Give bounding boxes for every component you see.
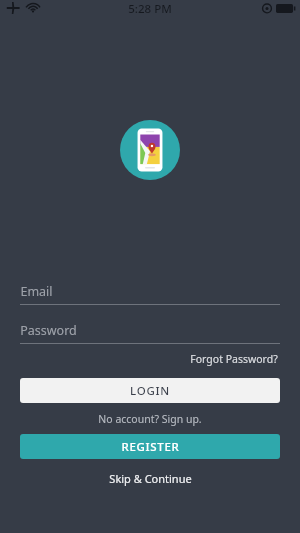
staticText: No account? Sign up.	[98, 412, 202, 426]
staticText: REGISTER	[121, 439, 180, 455]
staticText: Password	[20, 322, 77, 339]
staticText: Skip & Continue	[109, 471, 192, 486]
button[interactable]: Email	[20, 276, 280, 305]
button[interactable]: Forgot Password?	[188, 350, 280, 368]
button[interactable]: Skip & Continue	[105, 469, 196, 488]
staticText: 5:28 PM	[128, 1, 172, 17]
staticText: LOGIN	[130, 383, 170, 399]
button[interactable]: Password	[20, 315, 280, 344]
staticText: Forgot Password?	[190, 352, 278, 366]
button[interactable]: LOGIN	[20, 378, 280, 403]
button[interactable]: REGISTER	[20, 434, 280, 459]
button[interactable]: No account? Sign up.	[94, 410, 206, 428]
staticText: Email	[20, 283, 53, 300]
